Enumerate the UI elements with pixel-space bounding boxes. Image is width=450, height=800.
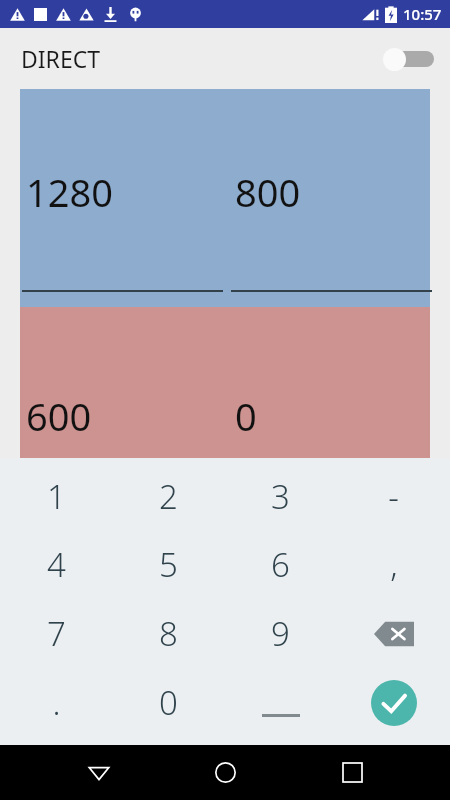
staticText: 10:57	[403, 4, 442, 24]
button[interactable]: .	[0, 668, 112, 737]
staticText: -	[388, 474, 399, 519]
button[interactable]: 0	[229, 307, 430, 458]
staticText: 9	[271, 611, 290, 656]
button[interactable]: 600	[20, 307, 221, 458]
staticText: ,	[390, 542, 398, 587]
staticText: DIRECT	[21, 43, 101, 74]
button[interactable]: 6	[224, 530, 337, 599]
staticText: 0	[159, 680, 178, 725]
staticText: 4	[47, 542, 66, 587]
button[interactable]: 5	[112, 530, 224, 599]
staticText: 800	[235, 166, 301, 218]
staticText: 8	[159, 611, 178, 656]
staticText: 6	[271, 542, 290, 587]
button[interactable]: 0	[112, 668, 224, 737]
button[interactable]: 9	[224, 599, 337, 668]
button[interactable]: 8	[112, 599, 224, 668]
button[interactable]: ,	[337, 530, 450, 599]
button[interactable]: 800	[229, 89, 430, 307]
staticText: 3	[271, 474, 290, 519]
staticText: .	[52, 680, 61, 725]
staticText: 1280	[26, 166, 113, 218]
staticText: 1	[47, 474, 66, 519]
button[interactable]: 1280	[20, 89, 221, 307]
button[interactable]: 1	[0, 462, 112, 530]
button[interactable]: Space	[224, 668, 337, 737]
button[interactable]: Backspace	[337, 599, 450, 668]
button[interactable]: Toggle direct mode	[382, 42, 436, 76]
button[interactable]: 7	[0, 599, 112, 668]
button[interactable]: 2	[112, 462, 224, 530]
button[interactable]: 3	[224, 462, 337, 530]
button[interactable]: Back	[71, 745, 127, 800]
staticText: 5	[159, 542, 178, 587]
button[interactable]: Recent apps	[324, 745, 380, 800]
button[interactable]: -	[337, 462, 450, 530]
staticText: 600	[26, 390, 92, 442]
staticText: 2	[159, 474, 178, 519]
button[interactable]: 4	[0, 530, 112, 599]
staticText: 0	[235, 390, 257, 442]
button[interactable]: Home	[197, 745, 253, 800]
staticText: 7	[47, 611, 66, 656]
button[interactable]: Confirm	[337, 668, 450, 737]
